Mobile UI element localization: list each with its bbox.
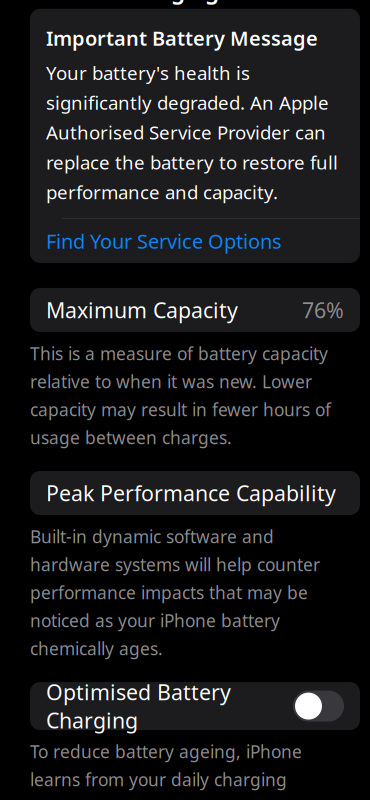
staticText: Important Battery Message <box>46 25 318 51</box>
staticText: This is a measure of battery capacity re… <box>30 342 331 449</box>
button[interactable]: Maximum Capacity <box>30 288 360 332</box>
staticText: Built-in dynamic software and hardware s… <box>30 525 320 660</box>
button[interactable]: Peak Performance Capability <box>30 471 360 515</box>
staticText: Maximum Capacity <box>46 296 238 324</box>
staticText: Find Your Service Options <box>46 228 282 254</box>
staticText: Battery Health & Charging <box>120 0 302 5</box>
staticText: To reduce battery ageing, iPhone learns … <box>30 740 326 800</box>
staticText: 76% <box>302 296 344 324</box>
staticText: Optimised Battery Charging <box>46 678 231 734</box>
staticText: Peak Performance Capability <box>46 479 336 507</box>
button[interactable]: Optimised Battery Charging <box>30 682 360 730</box>
staticText: Your battery's health is significantly d… <box>46 60 338 204</box>
button[interactable]: Find Your Service Options <box>30 219 360 263</box>
